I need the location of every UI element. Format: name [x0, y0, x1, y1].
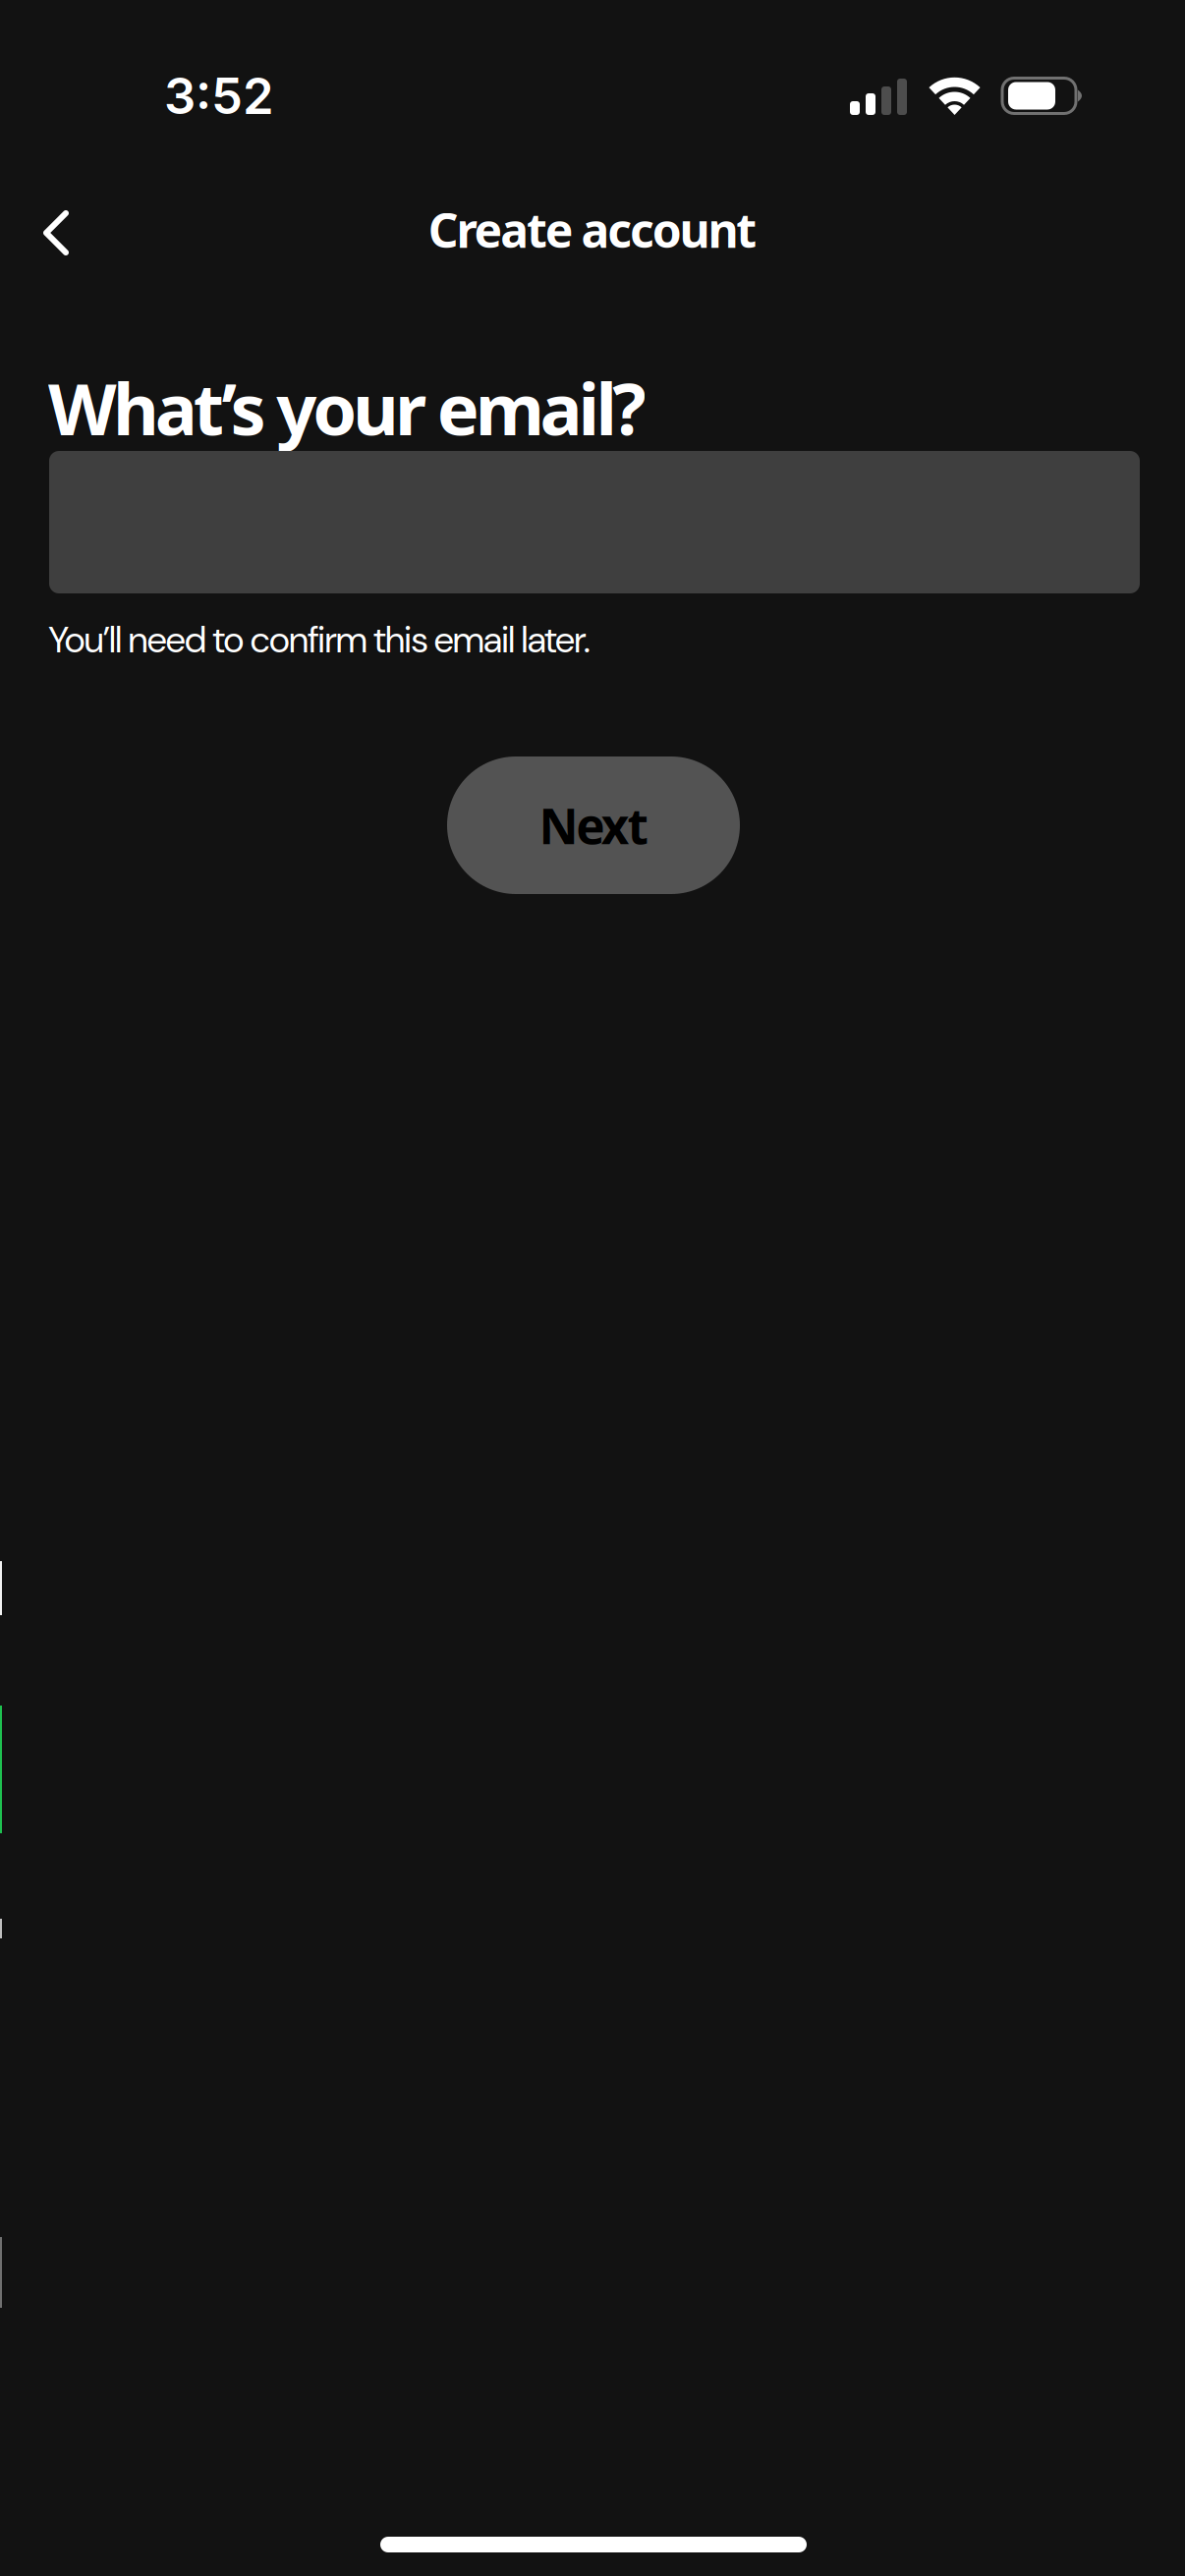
- staticText: Create account: [428, 197, 757, 262]
- staticText: You’ll need to confirm this email later.: [48, 616, 590, 664]
- staticText: Next: [539, 792, 648, 858]
- button[interactable]: Back: [15, 192, 97, 274]
- staticText: What’s your email?: [48, 360, 646, 456]
- button[interactable]: Next: [447, 756, 740, 894]
- staticText: 3:52: [164, 66, 274, 126]
